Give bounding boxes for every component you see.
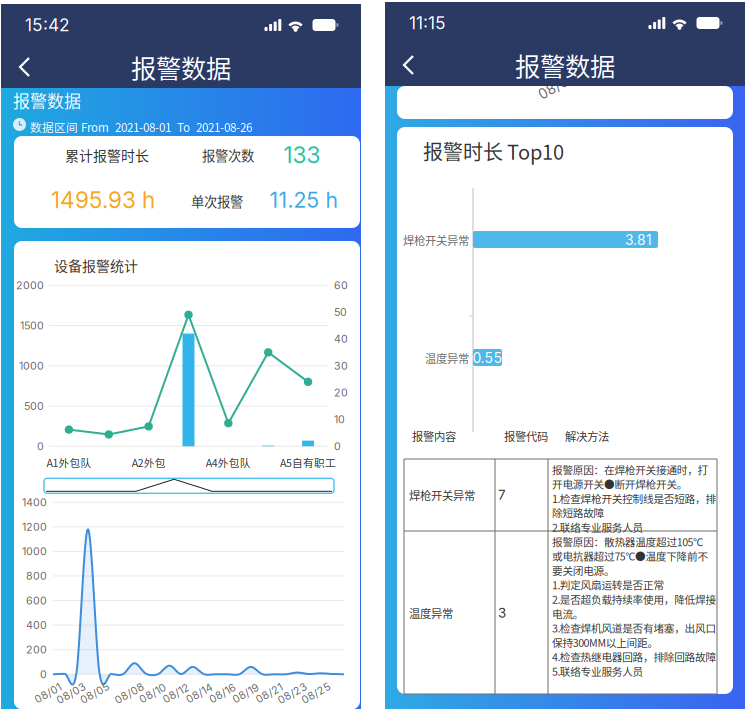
staticText: 报警数据 bbox=[515, 47, 615, 83]
staticText: 1000 bbox=[19, 359, 44, 372]
staticText: 20 bbox=[334, 386, 348, 399]
staticText: 1500 bbox=[20, 319, 44, 332]
staticText: 500 bbox=[24, 400, 44, 412]
staticText: 报警数据 bbox=[13, 88, 81, 112]
staticText: 08/03 bbox=[55, 687, 87, 700]
staticText: A4外包队 bbox=[206, 454, 251, 470]
staticText: 3.检查焊机风道是否有堵塞，出风口 bbox=[552, 620, 716, 636]
staticText: 11.25 h bbox=[269, 187, 338, 213]
staticText: 1400 bbox=[22, 496, 47, 509]
staticText: 温度异常 bbox=[409, 605, 453, 621]
staticText: 3 bbox=[498, 605, 506, 621]
staticText: 1495.93 h bbox=[51, 186, 155, 214]
staticText: 0 bbox=[40, 668, 47, 681]
staticText: 保持300MM以上间距。 bbox=[552, 635, 658, 650]
staticText: 数据区间 From 2021-08-01 To 2021-08-26 bbox=[30, 119, 252, 135]
staticText: 0 bbox=[37, 440, 44, 453]
staticText: 400 bbox=[26, 619, 47, 632]
staticText: A5自有职工 bbox=[280, 454, 336, 470]
staticText: 10 bbox=[334, 413, 345, 426]
staticText: 报警代码 bbox=[504, 428, 548, 444]
staticText: 60 bbox=[334, 279, 348, 292]
staticText: 电流。 bbox=[552, 606, 584, 621]
staticText: 开电源开关●断开焊枪开关。 bbox=[552, 476, 688, 492]
staticText: 5.联络专业服务人员 bbox=[552, 663, 644, 679]
staticText: 报警原因：在焊枪开关接通时，打 bbox=[552, 462, 709, 477]
staticText: 40 bbox=[334, 332, 348, 345]
staticText: 报警次数 bbox=[202, 145, 254, 165]
staticText: 报警时长 Top10 bbox=[423, 136, 564, 165]
staticText: 0.55 bbox=[472, 349, 502, 366]
staticText: 设备报警统计 bbox=[54, 255, 138, 275]
staticText: 1000 bbox=[22, 545, 47, 558]
staticText: 或电抗器超过75°C●温度下降前不 bbox=[552, 548, 708, 564]
staticText: 30 bbox=[334, 359, 348, 372]
staticText: 08/01 bbox=[33, 687, 62, 700]
staticText: 15:42 bbox=[25, 14, 70, 35]
staticText: 单次报警 bbox=[191, 191, 243, 211]
staticText: 08/01 bbox=[537, 78, 575, 95]
staticText: 累计报警时长 bbox=[65, 145, 149, 165]
staticText: 08/25 bbox=[300, 687, 331, 700]
staticText: 7 bbox=[498, 487, 506, 503]
staticText: 08/23 bbox=[276, 687, 308, 700]
staticText: 3.81 bbox=[625, 231, 652, 248]
staticText: 温度异常 bbox=[425, 350, 469, 366]
staticText: 要关闭电源。 bbox=[552, 563, 615, 578]
button[interactable]: Back bbox=[385, 43, 433, 87]
staticText: 200 bbox=[26, 643, 47, 656]
staticText: 50 bbox=[334, 306, 347, 319]
staticText: 2.是否超负载持续率使用，降低焊接 bbox=[552, 591, 716, 607]
staticText: 解决方法 bbox=[565, 428, 609, 444]
staticText: 08/19 bbox=[231, 687, 260, 700]
staticText: 08/14 bbox=[185, 687, 214, 700]
staticText: 11:15 bbox=[409, 12, 446, 33]
staticText: 08/12 bbox=[161, 687, 190, 700]
staticText: 800 bbox=[26, 569, 47, 582]
staticText: 08/08 bbox=[113, 687, 145, 700]
staticText: 4.检查热继电器回路，排除回路故障 bbox=[552, 649, 716, 664]
staticText: 报警数据 bbox=[131, 49, 231, 85]
staticText: 08/05 bbox=[79, 687, 110, 700]
staticText: 08/16 bbox=[208, 687, 237, 700]
staticText: 08/10 bbox=[138, 687, 167, 700]
staticText: 焊枪开关异常 bbox=[403, 232, 469, 248]
button[interactable]: Back bbox=[1, 45, 49, 89]
staticText: 报警原因：散热器温度超过105°C bbox=[552, 534, 703, 549]
staticText: 1.检查焊枪开关控制线是否短路，排 bbox=[552, 491, 716, 506]
staticText: 0 bbox=[334, 440, 341, 453]
staticText: 133 bbox=[283, 141, 320, 169]
staticText: A1外包队 bbox=[46, 454, 91, 470]
staticText: 1200 bbox=[22, 520, 47, 533]
staticText: 1.判定风扇运转是否正常 bbox=[552, 577, 664, 592]
staticText: 2000 bbox=[16, 279, 44, 292]
staticText: 08/21 bbox=[255, 687, 284, 700]
staticText: 除短路故障 bbox=[552, 505, 605, 520]
staticText: A2外包 bbox=[132, 454, 166, 470]
staticText: 2.联络专业服务人员 bbox=[552, 519, 644, 535]
staticText: 报警内容 bbox=[412, 428, 456, 444]
staticText: 焊枪开关异常 bbox=[409, 487, 475, 503]
staticText: 600 bbox=[26, 594, 47, 607]
